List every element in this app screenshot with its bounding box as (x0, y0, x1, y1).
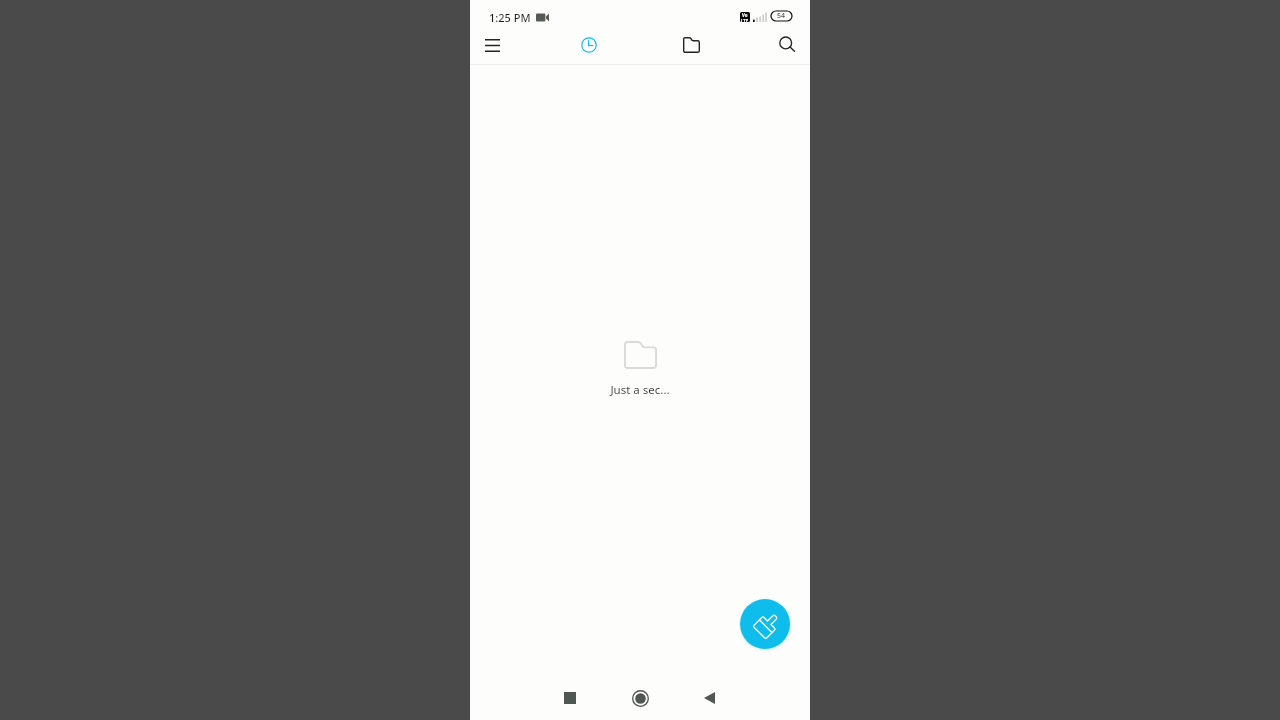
staticText: 1:25 PM (489, 10, 531, 25)
staticText: LTE (741, 18, 749, 22)
button[interactable]: Recents (548, 676, 592, 720)
button[interactable]: Folders (669, 23, 713, 67)
button[interactable]: Recent files (567, 23, 611, 67)
button[interactable]: Menu (470, 23, 514, 67)
staticText: 54 (777, 11, 786, 21)
staticText: Just a sec... (610, 382, 670, 398)
button[interactable]: Home (618, 676, 662, 720)
button[interactable]: Back (687, 676, 731, 720)
button[interactable]: Search (764, 22, 808, 66)
staticText: Vo (742, 12, 748, 18)
button[interactable]: Clean (740, 599, 790, 649)
